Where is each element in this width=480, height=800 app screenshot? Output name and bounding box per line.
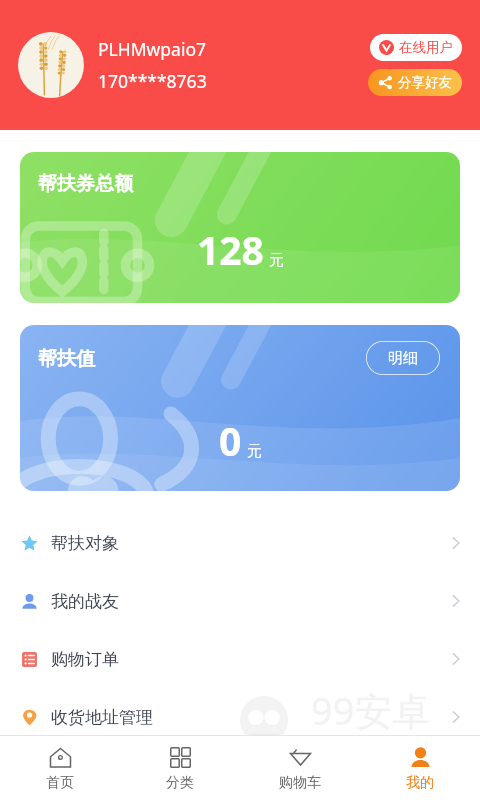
staticText: 收货地址管理 (51, 707, 452, 728)
button[interactable]: Avatar (18, 32, 84, 98)
staticText: 我的 (406, 774, 434, 792)
staticText: PLHMwpaio7 (98, 37, 207, 61)
button[interactable]: 我的战友 (0, 572, 480, 630)
staticText: 首页 (46, 774, 74, 792)
button[interactable]: 帮扶值 (20, 325, 460, 491)
staticText: 分类 (166, 774, 194, 792)
staticText: 在线用户 (399, 39, 453, 56)
staticText: 帮扶值 (38, 347, 95, 371)
button[interactable]: 我的 (360, 736, 480, 800)
staticText: 99安卓 (311, 684, 431, 736)
staticText: 元 (269, 251, 284, 270)
staticText: 帮扶券总额 (38, 172, 133, 196)
staticText: 明细 (388, 349, 418, 368)
button[interactable]: 在线用户 (370, 34, 462, 61)
staticText: 帮扶对象 (51, 533, 452, 554)
staticText: 128 (197, 223, 264, 276)
staticText: 170****8763 (98, 69, 207, 93)
staticText: 0 (219, 414, 242, 467)
button[interactable]: 收货地址管理 (0, 688, 480, 746)
staticText: 购物订单 (51, 649, 452, 670)
button[interactable]: 购物车 (240, 736, 360, 800)
button[interactable]: 购物订单 (0, 630, 480, 688)
button[interactable]: 明细 (366, 341, 440, 375)
staticText: 99anzhuo.com (317, 730, 421, 750)
staticText: 购物车 (279, 774, 321, 792)
button[interactable]: 首页 (0, 736, 120, 800)
button[interactable]: 帮扶对象 (0, 514, 480, 572)
staticText: 我的战友 (51, 591, 452, 612)
button[interactable]: 帮扶券总额 (20, 152, 460, 303)
staticText: 元 (247, 442, 262, 461)
button[interactable]: 分类 (120, 736, 240, 800)
staticText: 分享好友 (398, 74, 452, 91)
button[interactable]: 分享好友 (368, 69, 462, 96)
